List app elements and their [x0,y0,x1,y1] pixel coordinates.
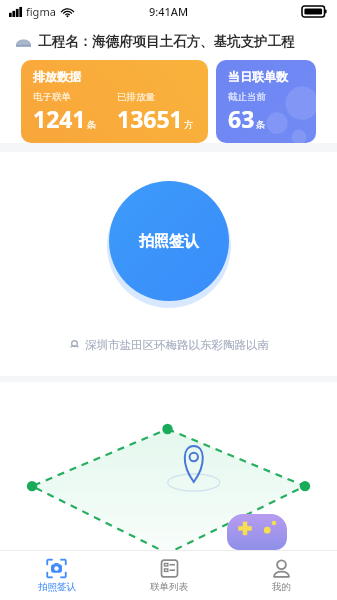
button[interactable]: 我的 [225,551,337,600]
staticText: 63 [228,103,255,134]
staticText: 已排放量 [117,91,155,103]
staticText: 1241 [33,103,86,134]
staticText: 截止当前 [228,91,266,103]
button[interactable]: 联单列表 [113,551,225,600]
staticText: 工程名：海德府项目土石方、基坑支护工程 [38,33,295,50]
button[interactable]: 拍照签认 [0,551,113,600]
staticText: 条 [87,119,97,131]
staticText: 我的 [272,581,291,593]
button[interactable]: 当日联单数 [216,60,316,143]
staticText: 条 [256,119,266,131]
button[interactable]: 拍照签认 [109,181,229,301]
staticText: 拍照签认 [139,232,199,251]
staticText: 联单列表 [150,581,188,593]
staticText: figma [26,4,56,19]
staticText: 当日联单数 [228,69,288,84]
staticText: 深圳市盐田区环梅路以东彩陶路以南 [85,338,269,352]
staticText: 方 [184,119,194,131]
staticText: 排放数据 [33,69,81,84]
staticText: 9:41AM [149,4,189,19]
staticText: 电子联单 [33,91,71,103]
button[interactable]: 排放数据 [21,60,208,143]
staticText: 拍照签认 [38,581,76,593]
button[interactable]: Game [227,514,287,550]
staticText: 13651 [117,103,183,134]
